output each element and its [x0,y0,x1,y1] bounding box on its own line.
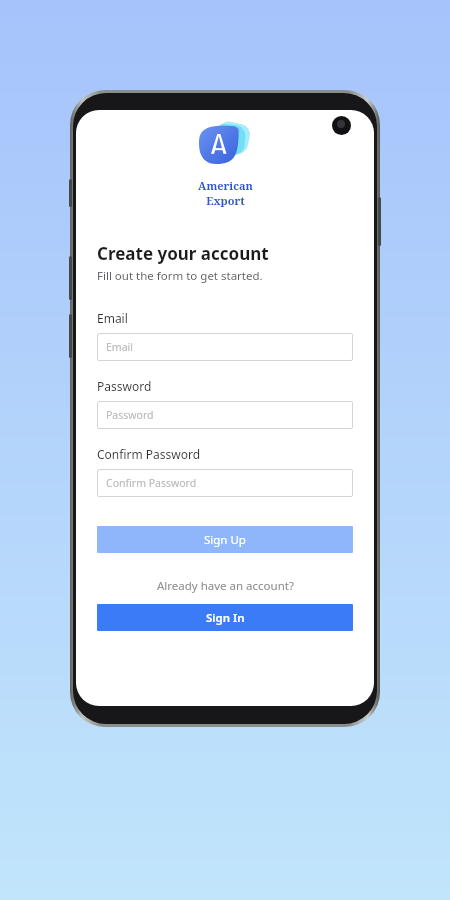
staticText: Sign Up [204,532,246,548]
staticText: Create your account [97,242,269,265]
staticText: Fill out the form to get started. [97,268,263,284]
staticText: American [198,178,253,193]
button[interactable]: Password [97,401,353,429]
button[interactable]: Sign In [97,604,353,631]
staticText: Email [97,310,128,326]
button[interactable]: Email [97,333,353,361]
staticText: Sign In [206,610,245,626]
staticText: Password [97,378,152,394]
staticText: Password [106,408,154,422]
staticText: Confirm Password [97,446,201,462]
staticText: Export [206,193,245,208]
button[interactable]: Sign Up [97,526,353,553]
staticText: Email [106,340,133,354]
button[interactable]: Confirm Password [97,469,353,497]
button[interactable]: Already have an account? [153,574,298,598]
staticText: Confirm Password [106,476,197,490]
